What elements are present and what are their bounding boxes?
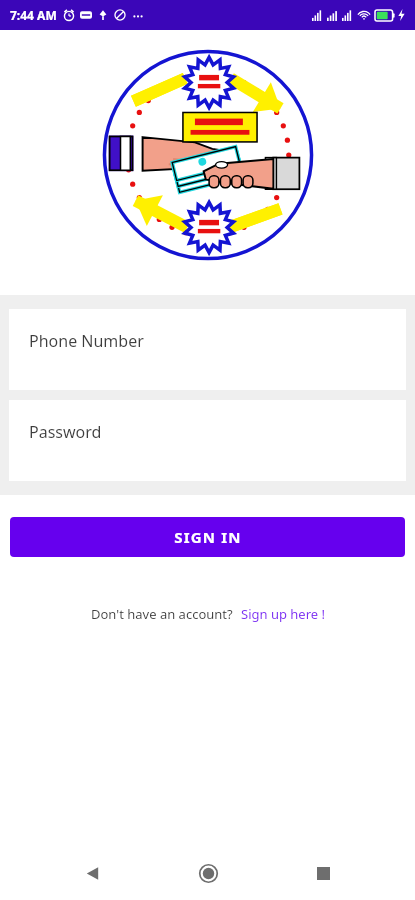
button[interactable]: Home: [186, 851, 230, 895]
button[interactable]: Password: [9, 400, 406, 481]
staticText: SIGN IN: [174, 527, 242, 547]
staticText: 7:44 AM: [10, 7, 57, 23]
button[interactable]: Back: [70, 851, 114, 895]
staticText: Sign up here !: [241, 605, 325, 623]
button[interactable]: SIGN IN: [10, 517, 405, 557]
staticText: Phone Number: [29, 330, 144, 352]
staticText: Password: [29, 421, 102, 443]
button[interactable]: Sign up here !: [241, 605, 325, 623]
staticText: Don't have an account?: [91, 605, 233, 623]
button[interactable]: Phone Number: [9, 309, 406, 390]
button[interactable]: Recent apps: [301, 851, 345, 895]
